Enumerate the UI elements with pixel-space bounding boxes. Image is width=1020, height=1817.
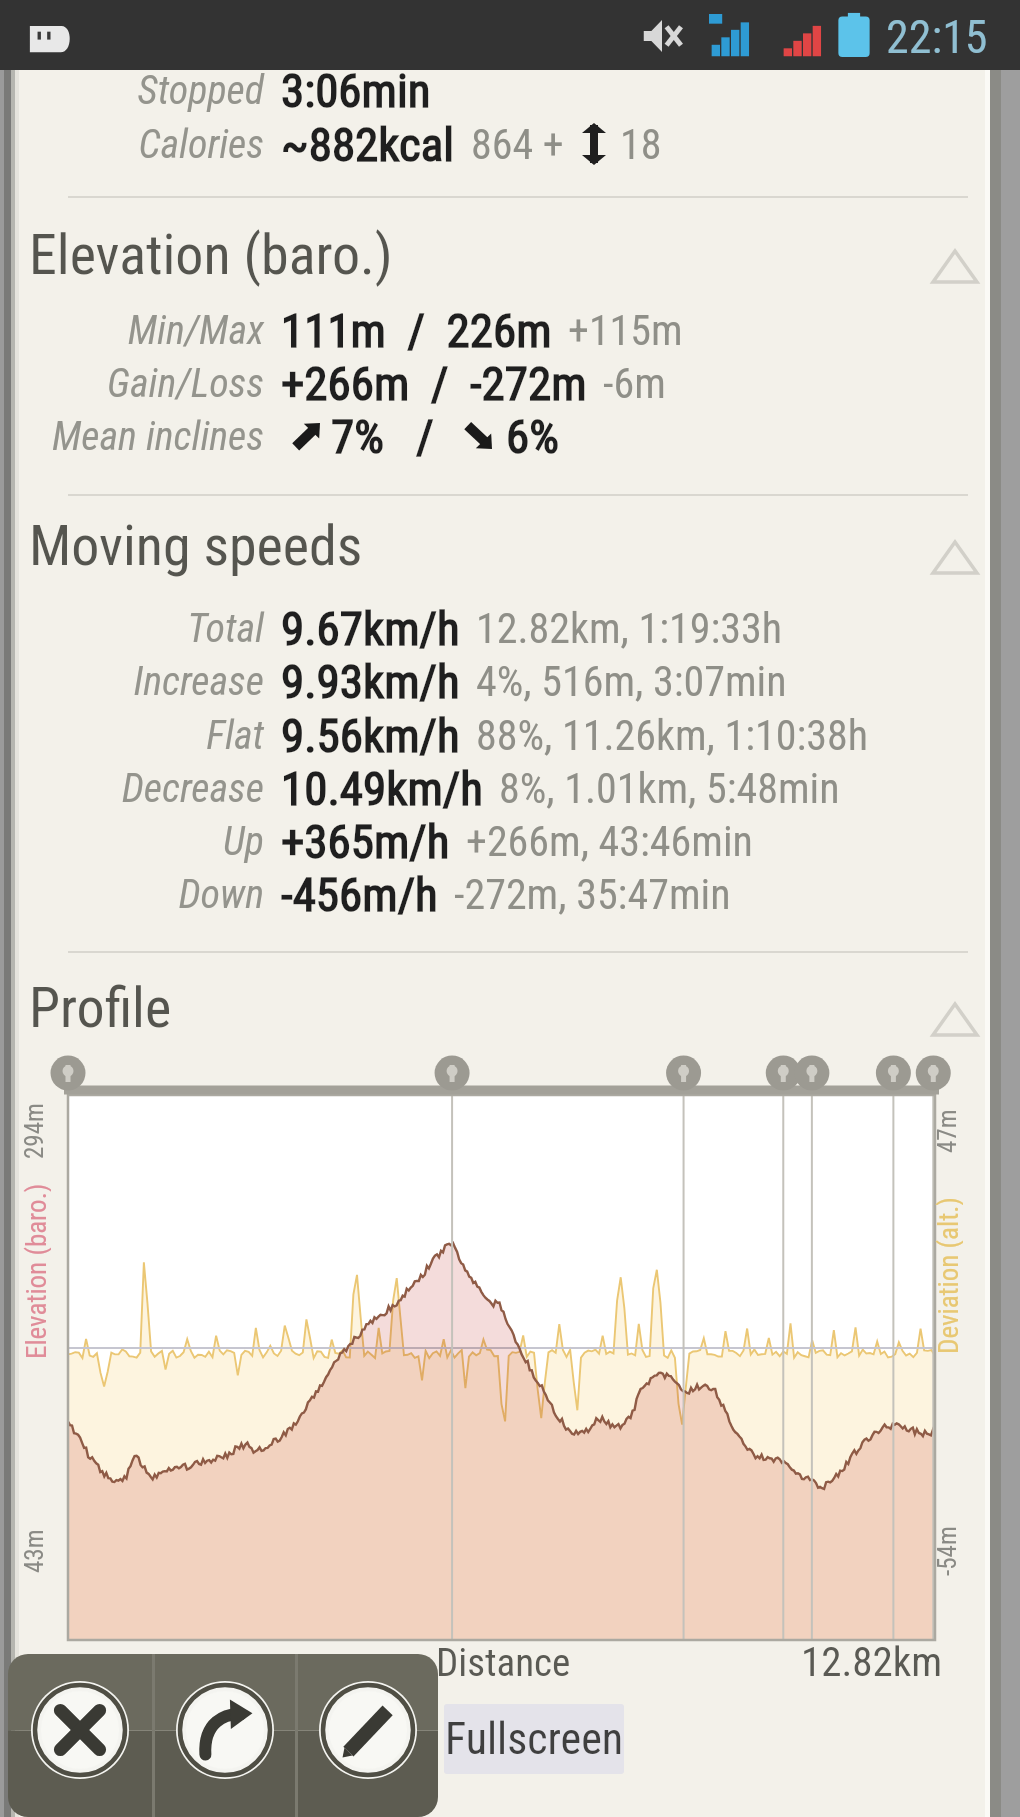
button[interactable]: Fullscreen: [444, 1704, 624, 1774]
staticText: -456m/h: [281, 867, 438, 921]
staticText: 9.56km/h: [281, 708, 460, 762]
staticText: Calories: [0, 121, 264, 168]
staticText: +365m/h: [281, 814, 450, 868]
staticText: Mean inclines: [0, 413, 264, 460]
staticText: Profile: [29, 975, 172, 1041]
staticText: 7% /: [331, 409, 434, 463]
staticText: 9.93km/h: [281, 654, 460, 708]
button[interactable]: Elevation (baro.): [0, 217, 1020, 293]
staticText: Distance: [436, 1640, 571, 1686]
staticText: 88%, 11.26km, 1:10:38h: [476, 711, 868, 760]
staticText: Deviation (alt.): [933, 1197, 963, 1354]
staticText: +115m: [568, 306, 683, 355]
staticText: 9.67km/h: [281, 601, 460, 655]
staticText: 12.82km, 1:19:33h: [476, 604, 783, 653]
staticText: Stopped: [0, 67, 264, 114]
staticText: 3:06min: [281, 63, 431, 117]
staticText: 47m: [933, 1109, 962, 1153]
staticText: 10.49km/h: [281, 761, 483, 815]
staticText: -272m, 35:47min: [454, 870, 731, 919]
staticText: Flat: [0, 712, 264, 759]
staticText: Decrease: [0, 765, 264, 812]
staticText: Elevation (baro.): [21, 1183, 51, 1359]
button[interactable]: Moving speeds: [0, 508, 1020, 584]
staticText: +266m / -272m: [281, 356, 587, 410]
staticText: 22:15: [886, 10, 988, 64]
staticText: Fullscreen: [445, 1713, 624, 1765]
staticText: ~882kcal: [281, 117, 455, 171]
button[interactable]: Share: [155, 1654, 295, 1817]
button[interactable]: Close: [8, 1654, 152, 1817]
button[interactable]: Profile: [0, 970, 1020, 1046]
staticText: 18: [620, 120, 662, 169]
staticText: 294m: [20, 1103, 49, 1159]
staticText: -6m: [603, 359, 666, 408]
staticText: 43m: [20, 1529, 49, 1573]
staticText: +266m, 43:46min: [466, 817, 753, 866]
staticText: Up: [0, 818, 264, 865]
staticText: 4%, 516m, 3:07min: [476, 657, 787, 706]
button[interactable]: Edit: [298, 1654, 438, 1817]
staticText: Elevation (baro.): [29, 222, 393, 288]
staticText: 864 +: [471, 120, 564, 169]
staticText: Min/Max: [0, 307, 264, 354]
staticText: Moving speeds: [29, 513, 363, 579]
staticText: 12.82km: [801, 1638, 943, 1686]
staticText: -54m: [933, 1526, 962, 1576]
staticText: Down: [0, 871, 264, 918]
staticText: Gain/Loss: [0, 360, 264, 407]
staticText: Increase: [0, 658, 264, 705]
staticText: 6%: [506, 409, 559, 463]
staticText: 111m / 226m: [281, 303, 552, 357]
staticText: 8%, 1.01km, 5:48min: [499, 764, 840, 813]
staticText: Total: [0, 605, 264, 652]
